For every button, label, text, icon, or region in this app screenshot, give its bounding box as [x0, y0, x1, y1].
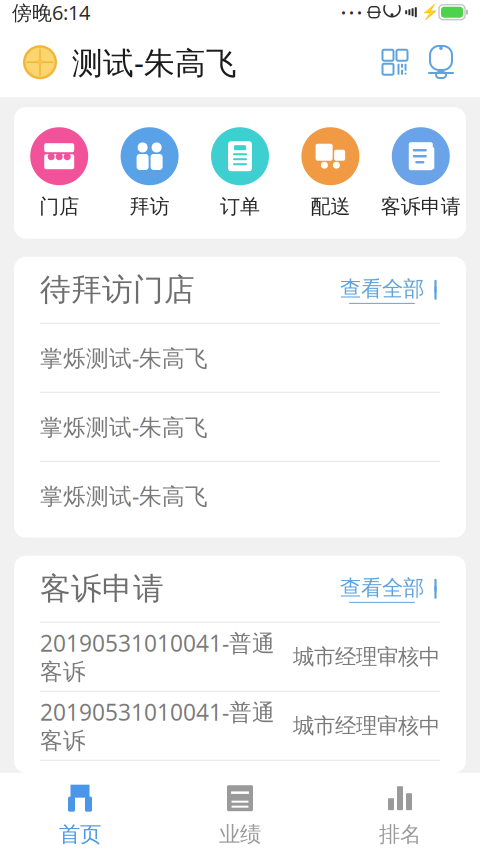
staticText: 待拜访门店 [40, 271, 195, 309]
staticText: 20190531010041-普通客诉 [40, 628, 275, 686]
staticText: 客诉申请 [40, 570, 164, 608]
button[interactable]: 掌烁测试-朱高飞 [14, 462, 466, 530]
button[interactable]: 首页 [0, 773, 160, 854]
button[interactable]: 掌烁测试-朱高飞 [14, 393, 466, 461]
button[interactable]: 掌烁测试-朱高飞 [14, 324, 466, 392]
staticText: 查看全部 [340, 575, 424, 601]
staticText: 城市经理审核中 [293, 713, 440, 739]
button[interactable]: 查看全部 [340, 276, 440, 304]
staticText: 拜访 [130, 194, 170, 219]
staticText: 傍晚6:14 [12, 0, 90, 25]
staticText: 掌烁测试-朱高飞 [40, 412, 208, 442]
button[interactable]: 门店 [14, 127, 104, 219]
button[interactable]: 业绩 [160, 773, 320, 854]
staticText: ⚡ [421, 4, 439, 21]
button[interactable]: 20190531010041-普通客诉 [14, 623, 466, 691]
staticText: 业绩 [219, 821, 261, 847]
staticText: 20190531010041-普通客诉 [40, 697, 275, 755]
button[interactable]: 订单 [195, 127, 285, 219]
button[interactable]: 拜访 [104, 127, 195, 219]
staticText: 掌烁测试-朱高飞 [40, 343, 208, 373]
button[interactable]: 配送 [285, 127, 376, 219]
staticText: 客诉申请 [381, 194, 461, 219]
staticText: 城市经理审核中 [293, 644, 440, 670]
staticText: 测试-朱高飞 [72, 42, 237, 83]
button[interactable]: 客诉申请 [376, 127, 466, 219]
staticText: 排名 [379, 821, 421, 847]
button[interactable]: 20190531010041-普通客诉 [14, 692, 466, 760]
button[interactable]: 扫一扫 [372, 39, 418, 85]
staticText: 查看全部 [340, 276, 424, 302]
button[interactable]: 通知 [418, 39, 464, 85]
staticText: 门店 [39, 194, 79, 219]
staticText: 首页 [59, 821, 101, 847]
button[interactable]: 查看全部 [340, 575, 440, 603]
staticText: 配送 [310, 194, 350, 219]
button[interactable]: 排名 [320, 773, 480, 854]
staticText: • • • [341, 3, 362, 21]
staticText: 掌烁测试-朱高飞 [40, 481, 208, 511]
staticText: 订单 [220, 194, 260, 219]
